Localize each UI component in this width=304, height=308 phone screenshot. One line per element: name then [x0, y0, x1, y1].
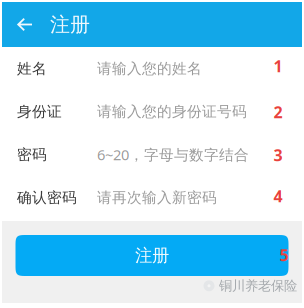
button[interactable]: Back: [2, 2, 43, 47]
staticText: 5: [279, 244, 288, 266]
staticText: 请输入您的身份证号码: [97, 102, 247, 120]
staticText: 注册: [135, 245, 169, 266]
button[interactable]: 注册: [15, 235, 288, 276]
staticText: 1: [273, 55, 282, 77]
staticText: 4: [273, 185, 282, 207]
staticText: 姓名: [17, 59, 47, 77]
button[interactable]: 身份证: [2, 90, 302, 133]
staticText: 6~20，字母与数字结合: [97, 145, 249, 164]
staticText: 密码: [17, 145, 47, 163]
staticText: 请再次输入新密码: [97, 188, 217, 206]
staticText: 2: [273, 101, 282, 123]
staticText: 确认密码: [17, 188, 77, 206]
button[interactable]: 确认密码: [2, 176, 302, 219]
staticText: 请输入您的姓名: [97, 59, 202, 77]
button[interactable]: 姓名: [2, 47, 302, 90]
staticText: 3: [273, 144, 282, 166]
staticText: 身份证: [17, 102, 62, 120]
staticText: 注册: [50, 12, 90, 37]
button[interactable]: 密码: [2, 133, 302, 176]
staticText: 铜川养老保险: [219, 278, 297, 294]
